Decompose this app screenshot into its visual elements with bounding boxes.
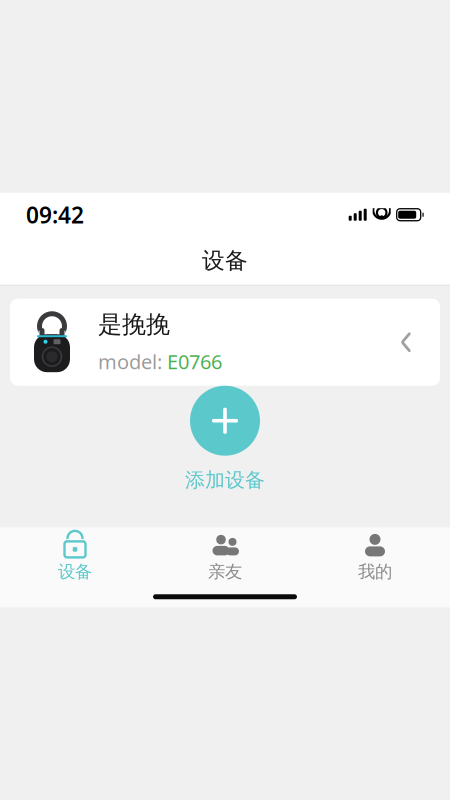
staticText: 设备 bbox=[58, 561, 92, 582]
staticText: 我的 bbox=[358, 561, 392, 582]
button[interactable]: 添加设备 bbox=[185, 386, 265, 492]
staticText: 设备 bbox=[202, 247, 248, 275]
button[interactable]: 我的 bbox=[300, 531, 450, 583]
button[interactable]: 是挽挽 bbox=[10, 299, 440, 386]
staticText: 添加设备 bbox=[185, 468, 265, 492]
button[interactable]: 亲友 bbox=[150, 531, 300, 583]
button[interactable]: 设备 bbox=[0, 531, 150, 583]
staticText: 09:42 bbox=[26, 200, 84, 230]
staticText: model: bbox=[98, 348, 167, 375]
staticText: E0766 bbox=[167, 348, 222, 375]
staticText: 亲友 bbox=[208, 561, 242, 582]
staticText: 是挽挽 bbox=[98, 310, 170, 339]
